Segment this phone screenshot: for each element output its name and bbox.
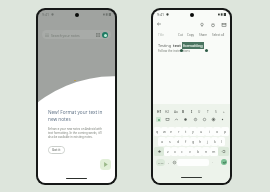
button[interactable]: n (202, 147, 210, 156)
button[interactable]: Enter (221, 159, 227, 165)
staticText: formatting (183, 43, 203, 48)
staticText: Got it (52, 148, 61, 152)
button[interactable]: Backspace (218, 147, 229, 156)
button[interactable]: c (178, 147, 186, 156)
button[interactable]: r (175, 127, 182, 136)
staticText: Cut (178, 33, 183, 37)
staticText: T (207, 110, 209, 114)
staticText: Share (199, 33, 208, 37)
staticText: p (224, 129, 227, 134)
button[interactable]: H2 (165, 109, 170, 114)
button[interactable]: Got it (48, 146, 65, 154)
staticText: Aa (174, 110, 178, 114)
staticText: x (174, 149, 176, 154)
staticText: t (185, 129, 187, 134)
button[interactable]: Tool (183, 117, 188, 122)
button[interactable]: Tool (220, 117, 225, 122)
button[interactable]: m (210, 147, 218, 156)
staticText: q (156, 129, 159, 134)
button[interactable]: Tool (165, 117, 170, 122)
button[interactable]: i (205, 127, 213, 136)
staticText: m (212, 149, 216, 154)
button[interactable]: Shift (154, 147, 164, 156)
staticText: U (198, 110, 201, 114)
button[interactable]: H1 (157, 109, 162, 114)
button[interactable]: a (158, 137, 166, 146)
button[interactable]: k (211, 137, 218, 146)
button[interactable]: ?123 (156, 159, 165, 166)
button[interactable]: Emoji (171, 158, 177, 166)
button[interactable]: q (154, 127, 161, 136)
button[interactable]: d (174, 137, 182, 146)
button[interactable]: Tool (174, 117, 179, 122)
button[interactable]: Copy (185, 33, 197, 37)
button[interactable]: S (213, 109, 218, 114)
button[interactable]: u (197, 127, 205, 136)
staticText: ?123 (158, 161, 164, 164)
button[interactable]: p (221, 127, 229, 136)
staticText: Select all (212, 33, 225, 37)
button[interactable]: , (165, 158, 171, 166)
staticText: z (167, 149, 169, 154)
button[interactable]: Tool (211, 117, 216, 122)
staticText: S (215, 110, 217, 114)
staticText: u (200, 129, 203, 134)
button[interactable]: + (221, 109, 226, 114)
staticText: Enhance your new notes on Android with t… (48, 127, 106, 139)
button[interactable]: s (166, 137, 174, 146)
staticText: v (189, 149, 191, 154)
staticText: Copy (187, 33, 195, 37)
staticText: + (223, 110, 225, 114)
button[interactable]: z (164, 147, 171, 156)
button[interactable]: e (168, 127, 175, 136)
staticText: i (209, 129, 210, 134)
button[interactable]: T (205, 109, 210, 114)
button[interactable]: b (194, 147, 202, 156)
staticText: l (221, 139, 222, 144)
button[interactable]: Pin (198, 21, 205, 28)
button[interactable]: Search your notes (42, 30, 111, 39)
staticText: w (163, 129, 166, 134)
staticText: H2 (165, 110, 170, 114)
staticText: h (199, 139, 202, 144)
staticText: Search your notes (51, 33, 80, 38)
staticText: . (212, 160, 213, 164)
button[interactable]: Select all (210, 33, 227, 37)
button[interactable]: Cut (176, 33, 185, 37)
button[interactable]: Gboard (156, 117, 161, 122)
button[interactable]: Remind me (209, 21, 216, 28)
button[interactable]: Share (197, 33, 210, 37)
button[interactable]: Aa (173, 109, 178, 114)
button[interactable]: g (190, 137, 197, 146)
staticText: r (178, 129, 180, 134)
button[interactable]: Archive (220, 21, 227, 28)
button[interactable]: Compose (100, 159, 111, 170)
button[interactable]: Tool (193, 117, 198, 122)
button[interactable]: j (204, 137, 211, 146)
staticText: k (214, 139, 216, 144)
button[interactable]: t (182, 127, 189, 136)
button[interactable]: B (181, 109, 186, 114)
button[interactable]: Back (156, 21, 162, 27)
staticText: n (205, 149, 208, 154)
staticText: 9:41 (42, 12, 50, 17)
button[interactable]: w (161, 127, 168, 136)
button[interactable]: o (213, 127, 221, 136)
button[interactable]: l (218, 137, 225, 146)
staticText: y (192, 129, 194, 134)
staticText: New! Format your text in new notes (48, 109, 112, 123)
button[interactable]: y (189, 127, 197, 136)
button[interactable]: v (186, 147, 194, 156)
button[interactable]: Tool (202, 117, 207, 122)
staticText: g (192, 139, 195, 144)
staticText: Follow the instructions (158, 49, 190, 53)
button[interactable]: I (189, 109, 194, 114)
button[interactable]: f (182, 137, 190, 146)
button[interactable]: h (197, 137, 204, 146)
button[interactable]: x (171, 147, 178, 156)
staticText: 9:41 (157, 12, 165, 17)
button[interactable]: U (197, 109, 202, 114)
staticText: a (161, 139, 164, 144)
